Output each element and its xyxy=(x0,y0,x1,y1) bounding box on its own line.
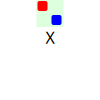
staticText: X xyxy=(45,27,54,48)
